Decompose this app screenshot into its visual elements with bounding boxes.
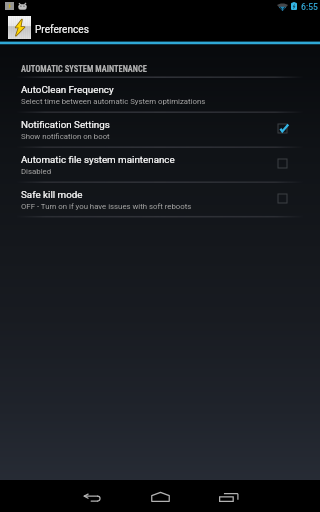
- button[interactable]: Automatic file system maintenance: [0, 147, 320, 182]
- staticText: Preferences: [35, 24, 89, 36]
- staticText: Safe kill mode: [21, 189, 83, 200]
- staticText: 6:55: [301, 2, 318, 12]
- staticText: AutoClean Frequency: [21, 84, 114, 95]
- button[interactable]: Safe kill mode: [0, 182, 320, 217]
- button[interactable]: Disabled: [268, 186, 298, 211]
- staticText: Disabled: [21, 167, 52, 176]
- staticText: Automatic file system maintenance: [21, 154, 175, 165]
- button[interactable]: Recent apps: [204, 480, 252, 512]
- button[interactable]: Back: [68, 480, 116, 512]
- button[interactable]: [0, 14, 320, 42]
- button[interactable]: Enabled: [268, 116, 298, 141]
- staticText: OFF - Turn on if you have issues with so…: [21, 202, 192, 211]
- staticText: AUTOMATIC SYSTEM MAINTENANCE: [21, 64, 147, 74]
- staticText: Show notification on boot: [21, 132, 110, 141]
- button[interactable]: AutoClean Frequency: [0, 77, 320, 112]
- button[interactable]: Home: [136, 480, 184, 512]
- staticText: Notification Settings: [21, 119, 110, 130]
- button[interactable]: Notification Settings: [0, 112, 320, 147]
- button[interactable]: Disabled: [268, 151, 298, 176]
- staticText: Select time between automatic System opt…: [21, 97, 206, 106]
